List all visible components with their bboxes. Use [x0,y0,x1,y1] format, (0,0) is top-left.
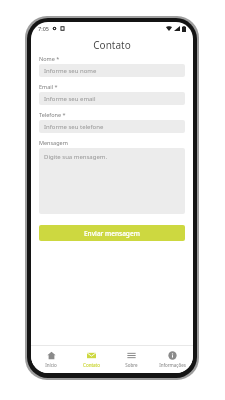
staticText: Início [45,362,57,368]
button[interactable]: Digite sua mensagem. [39,148,185,214]
staticText: Nome * [39,55,60,62]
staticText: Informe seu nome [44,67,97,75]
button[interactable]: Enviar mensagem [39,225,185,241]
staticText: 7:05 [38,25,49,32]
staticText: Email * [39,83,58,90]
staticText: Informações [159,362,186,368]
staticText: Telefone * [39,111,66,118]
button[interactable]: Contato [71,346,111,373]
button[interactable]: Sobre [111,346,152,373]
staticText: Contato [83,362,100,368]
button[interactable]: Informe seu email [39,92,185,105]
staticText: Digite sua mensagem. [44,153,108,161]
staticText: Informe seu telefone [44,123,104,131]
button[interactable]: Informe seu telefone [39,120,185,133]
staticText: Mensagem [39,139,68,146]
staticText: Sobre [125,362,138,368]
staticText: Informe seu email [44,95,96,103]
button[interactable]: Informações [152,346,193,373]
button[interactable]: Início [31,346,71,373]
button[interactable]: Informe seu nome [39,64,185,77]
staticText: Enviar mensagem [84,229,140,238]
staticText: Contato [93,38,131,52]
